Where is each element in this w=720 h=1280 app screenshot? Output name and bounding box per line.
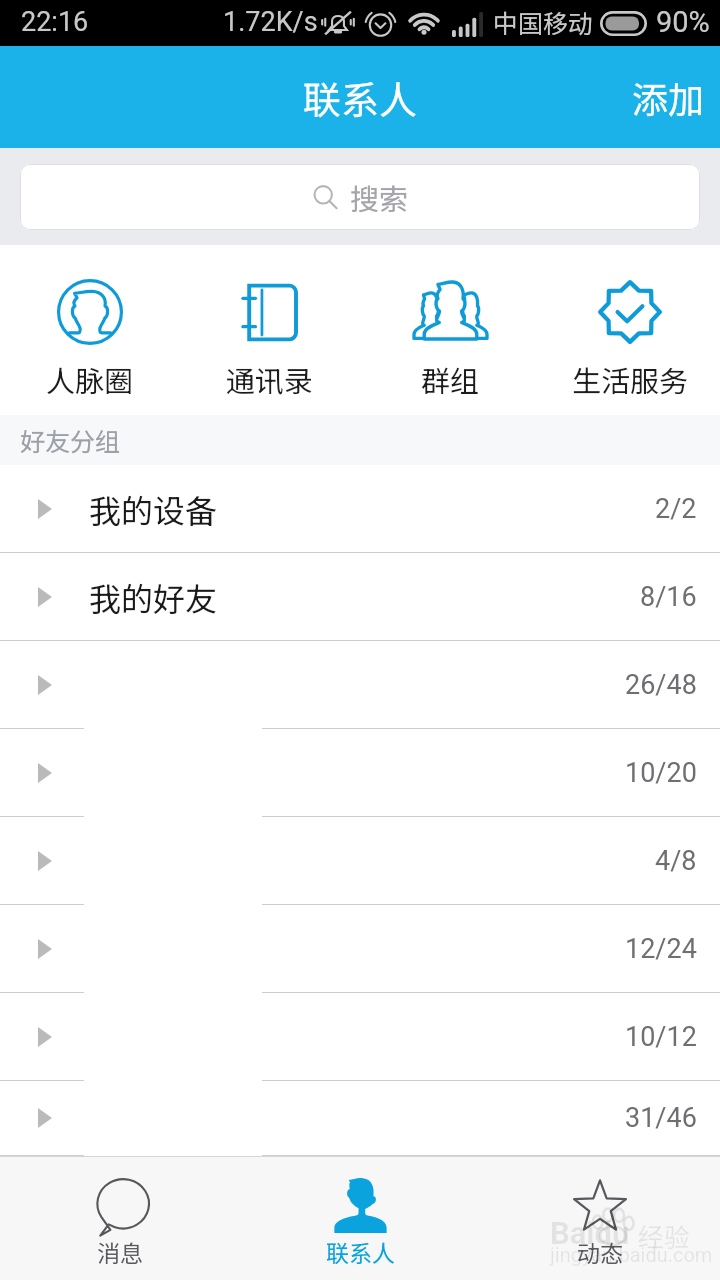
button[interactable]: 我的设备	[0, 465, 720, 553]
staticText: 我的好友	[89, 574, 218, 620]
staticText: 人脉圈	[46, 358, 134, 400]
button[interactable]: 生活服务	[540, 245, 720, 415]
button[interactable]: 消息	[0, 1157, 240, 1280]
staticText: Baidu	[550, 1215, 630, 1251]
button[interactable]: 我的好友	[0, 553, 720, 641]
staticText: 经验	[638, 1217, 691, 1255]
button[interactable]: 动态	[480, 1157, 720, 1280]
staticText: 动态	[577, 1235, 623, 1268]
button[interactable]: 联系人	[240, 1157, 480, 1280]
staticText: 1.72K/s	[223, 6, 318, 38]
button[interactable]: 搜索	[20, 164, 700, 230]
staticText: 10/20	[625, 757, 697, 789]
staticText: 添加	[632, 71, 705, 123]
staticText: 生活服务	[572, 358, 689, 400]
staticText: 我的设备	[89, 486, 218, 532]
button[interactable]: 分组 31/46	[0, 1081, 720, 1156]
staticText: 22:16	[21, 6, 89, 38]
staticText: 搜索	[350, 176, 409, 218]
staticText: 通讯录	[226, 358, 314, 400]
button[interactable]: 分组 10/12	[0, 993, 720, 1081]
staticText: 群组	[421, 358, 480, 400]
button[interactable]: 群组	[360, 245, 540, 415]
button[interactable]: 分组 4/8	[0, 817, 720, 905]
button[interactable]: 人脉圈	[0, 245, 180, 415]
staticText: 90%	[656, 5, 710, 39]
button[interactable]: 分组 10/20	[0, 729, 720, 817]
staticText: jingyan.baidu.com	[550, 1243, 713, 1266]
staticText: 好友分组	[20, 422, 121, 458]
staticText: 12/24	[625, 933, 697, 965]
staticText: 中国移动	[493, 4, 594, 40]
button[interactable]: 分组 12/24	[0, 905, 720, 993]
staticText: 26/48	[625, 669, 697, 701]
staticText: 消息	[97, 1235, 143, 1268]
button[interactable]: 通讯录	[180, 245, 360, 415]
button[interactable]: 添加	[610, 46, 720, 148]
staticText: 31/46	[625, 1102, 697, 1134]
staticText: 4/8	[655, 845, 697, 877]
staticText: 联系人	[303, 70, 418, 125]
staticText: 10/12	[625, 1021, 697, 1053]
staticText: 8/16	[640, 581, 697, 613]
staticText: 联系人	[326, 1235, 395, 1268]
button[interactable]: 分组 26/48	[0, 641, 720, 729]
staticText: 2/2	[655, 493, 697, 525]
